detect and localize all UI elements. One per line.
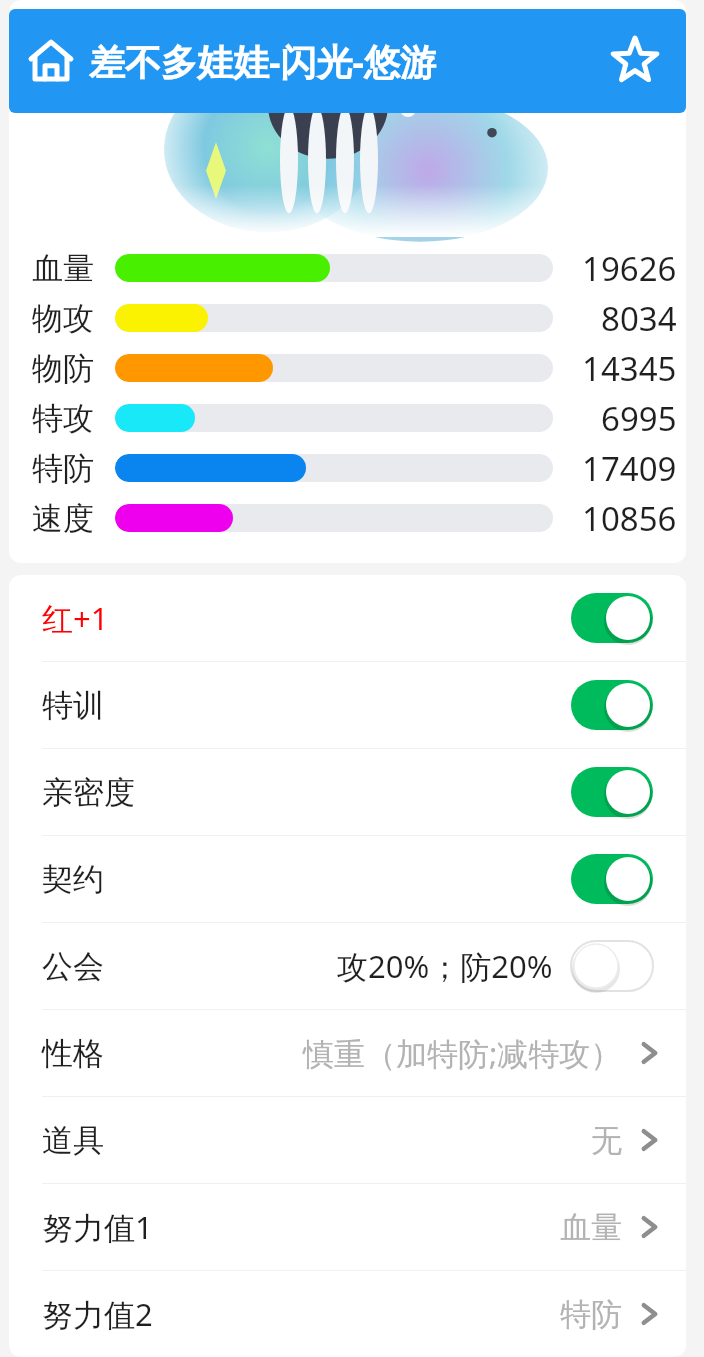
button[interactable]: Home: [23, 33, 79, 89]
staticText: 无: [591, 1121, 622, 1160]
button[interactable]: 契约: [9, 836, 686, 922]
staticText: 性格: [42, 1034, 104, 1073]
button[interactable]: 公会: [9, 923, 686, 1009]
button[interactable]: 努力值1: [9, 1184, 686, 1270]
staticText: 6995: [601, 396, 677, 441]
staticText: 血量: [560, 1208, 622, 1247]
staticText: 努力值1: [42, 1206, 153, 1248]
staticText: 10856: [582, 496, 677, 541]
staticText: 17409: [582, 446, 677, 491]
button[interactable]: 红+1: [9, 575, 686, 661]
staticText: 血量: [32, 249, 94, 288]
staticText: 差不多娃娃-闪光-悠游: [89, 37, 437, 86]
staticText: 特训: [42, 686, 104, 725]
staticText: 公会: [42, 947, 104, 986]
button[interactable]: Favorite: [608, 34, 662, 88]
staticText: 19626: [582, 246, 677, 291]
staticText: 特防: [32, 449, 94, 488]
staticText: 攻20%；防20%: [337, 945, 553, 987]
staticText: 物防: [32, 349, 94, 388]
staticText: 特防: [560, 1295, 622, 1334]
staticText: 努力值2: [42, 1293, 153, 1335]
staticText: 特攻: [32, 399, 94, 438]
button[interactable]: 亲密度: [9, 749, 686, 835]
staticText: 红+1: [42, 597, 109, 639]
button[interactable]: 特训: [9, 662, 686, 748]
button[interactable]: 道具: [9, 1097, 686, 1183]
button[interactable]: 努力值2: [9, 1271, 686, 1357]
button[interactable]: 性格: [9, 1010, 686, 1096]
staticText: 14345: [582, 346, 677, 391]
staticText: 速度: [32, 499, 94, 538]
staticText: 契约: [42, 860, 104, 899]
staticText: 道具: [42, 1121, 104, 1160]
staticText: 物攻: [32, 299, 94, 338]
staticText: 慎重（加特防;减特攻）: [303, 1032, 622, 1074]
staticText: 8034: [601, 296, 677, 341]
staticText: 亲密度: [42, 773, 135, 812]
